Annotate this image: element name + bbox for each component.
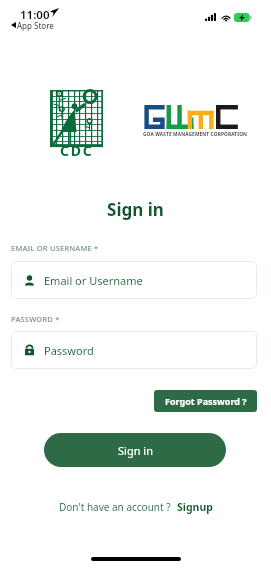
staticText: Email or Username [44,273,143,288]
staticText: App Store [17,20,54,31]
button[interactable]: Sign in [44,433,226,467]
staticText: EMAIL OR USERNAME * [11,243,99,253]
staticText: 11:00 [20,7,50,23]
staticText: Forgot Password ? [165,395,247,407]
button[interactable]: Password [11,331,257,369]
button[interactable]: Signup [177,500,213,514]
staticText: GOA WASTE MANAGEMENT CORPORATION [143,131,248,138]
button[interactable]: Email or Username [11,261,257,299]
staticText: Password [44,343,94,358]
button[interactable]: Forgot Password ? [154,390,257,412]
staticText: PASSWORD * [11,314,60,324]
staticText: Sign in [0,198,271,221]
staticText: Signup [177,500,213,514]
staticText: Don't have an account ? [59,500,171,514]
staticText: CDC [60,141,94,160]
staticText: Sign in [118,443,153,458]
